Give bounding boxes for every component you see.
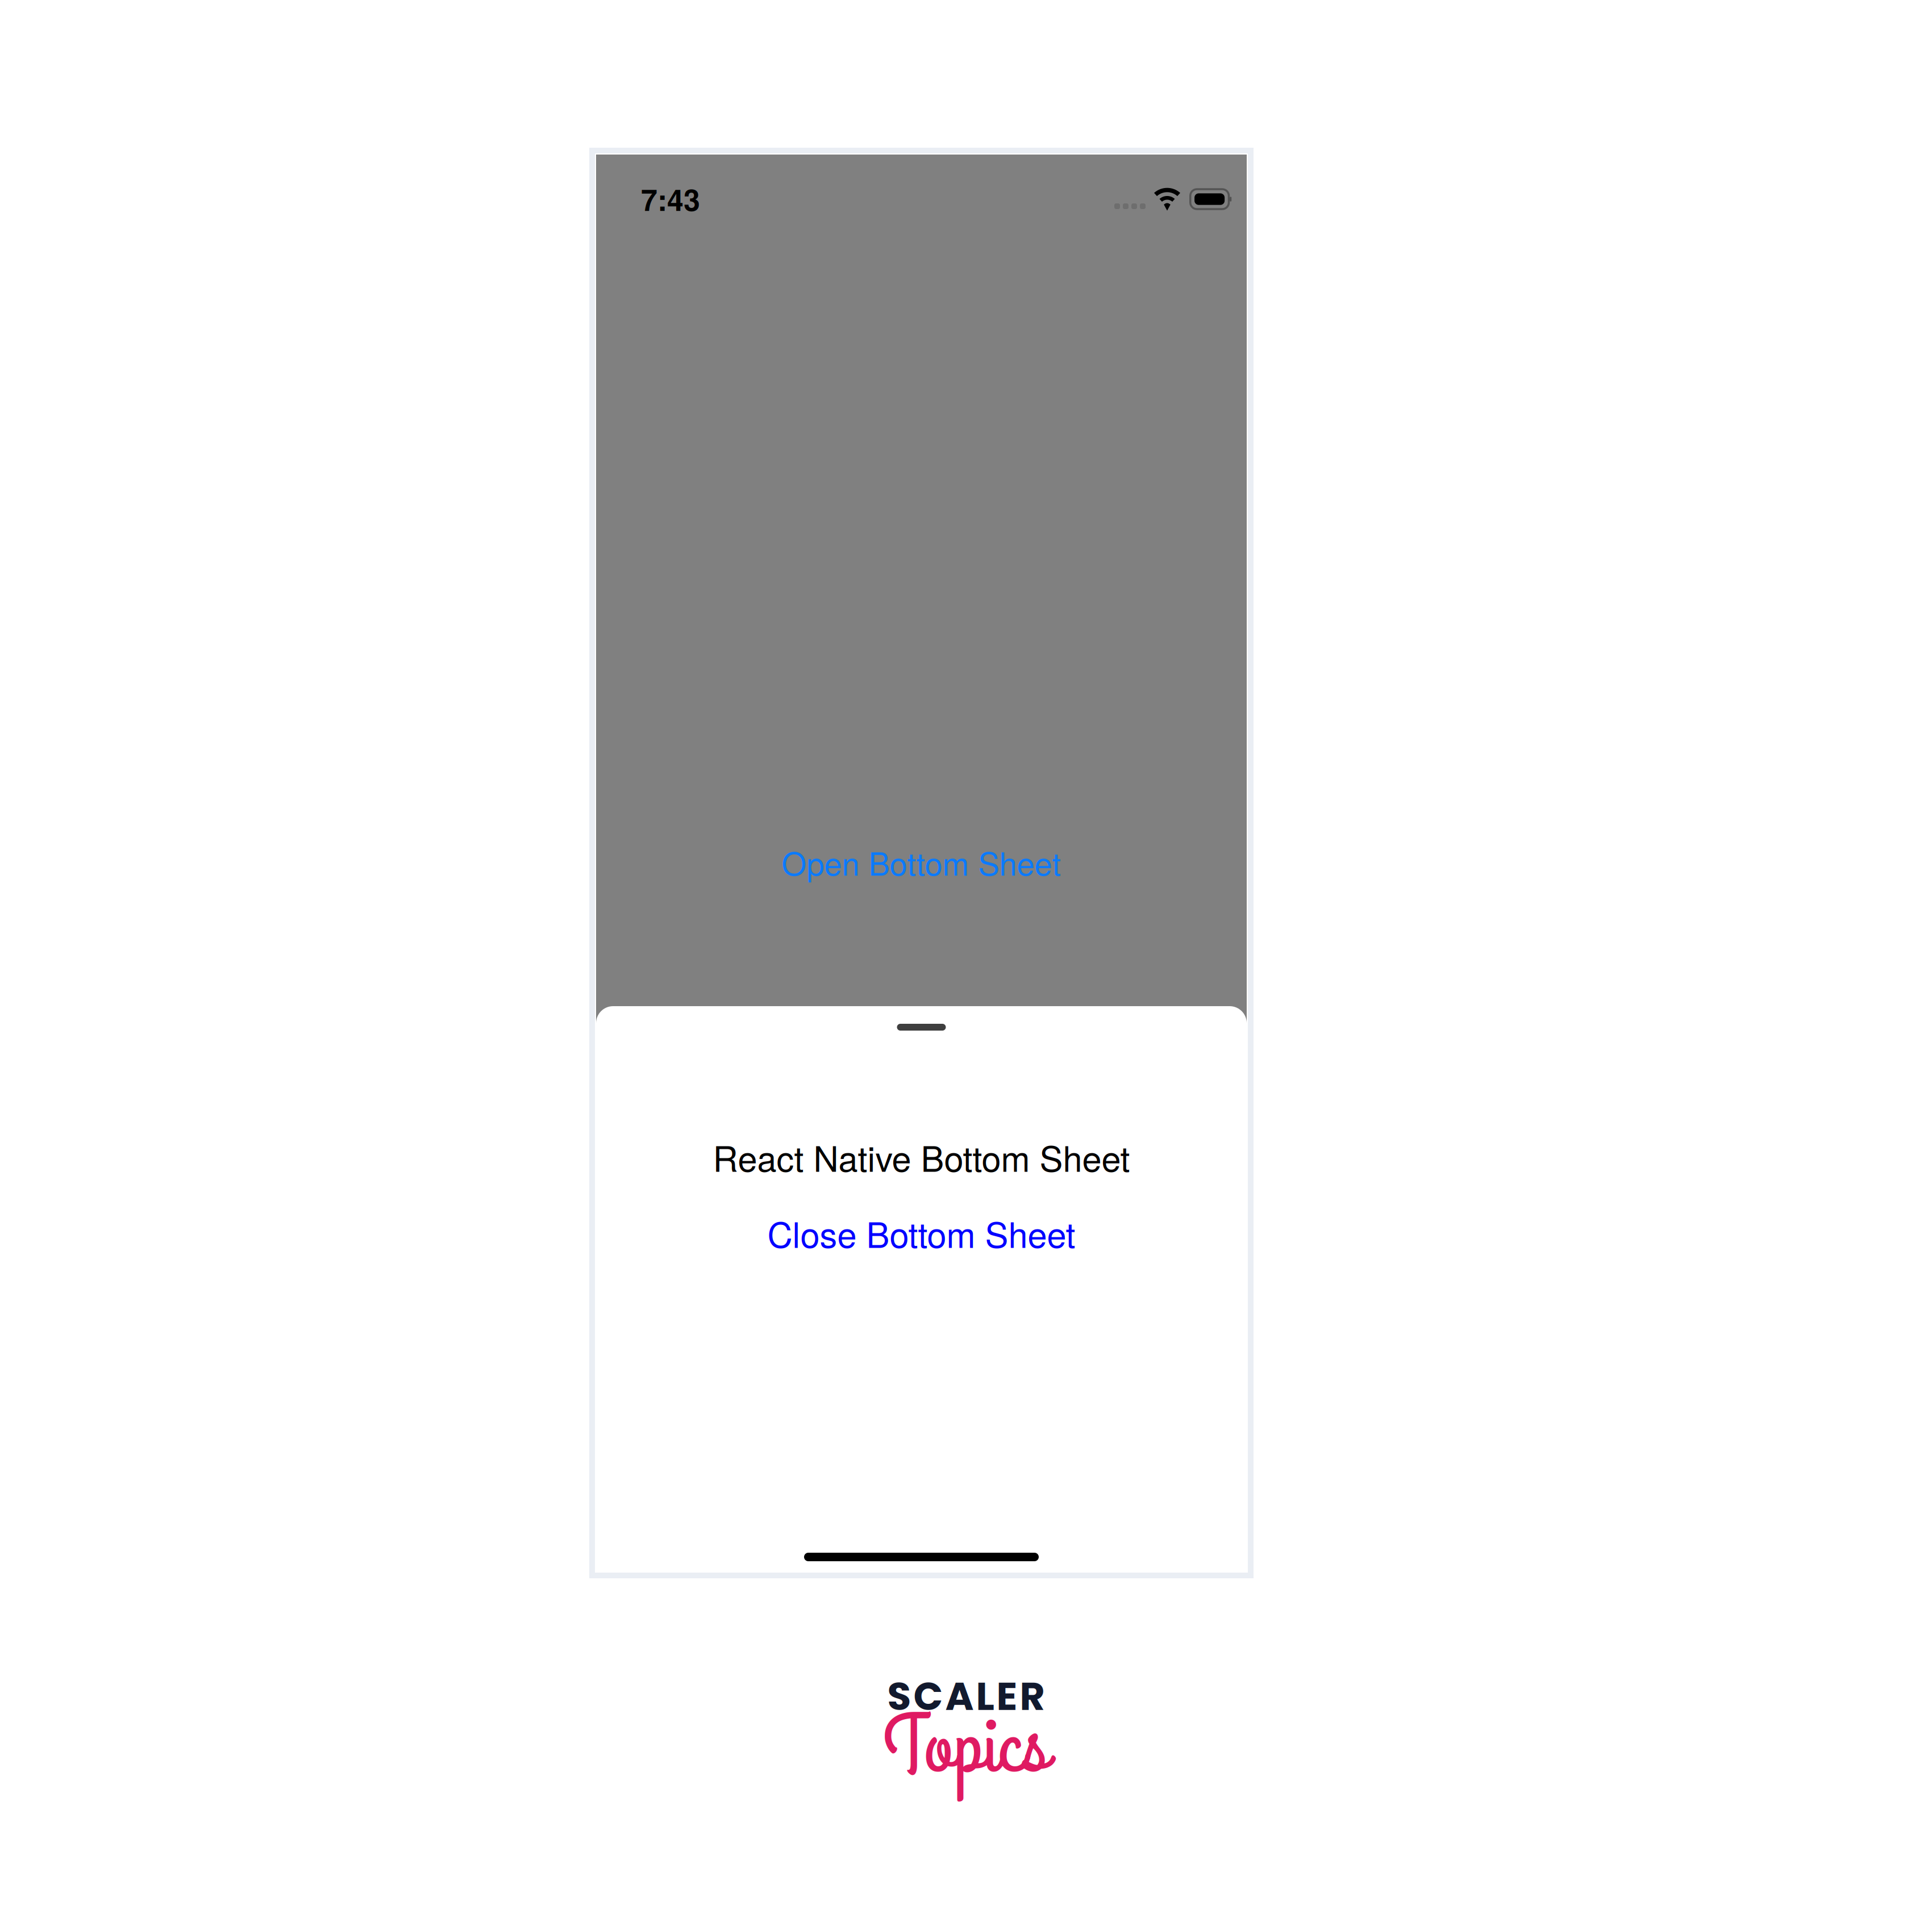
- button[interactable]: Close Bottom Sheet: [596, 1209, 1247, 1257]
- button[interactable]: Open Bottom Sheet: [596, 840, 1247, 884]
- staticText: S C A L E R: [887, 1669, 1045, 1723]
- staticText: Topics: [883, 1692, 1049, 1803]
- staticText: Open Bottom Sheet: [782, 839, 1061, 885]
- staticText: React Native Bottom Sheet: [713, 1132, 1130, 1182]
- staticText: Close Bottom Sheet: [767, 1208, 1075, 1258]
- staticText: 7:43: [641, 178, 700, 220]
